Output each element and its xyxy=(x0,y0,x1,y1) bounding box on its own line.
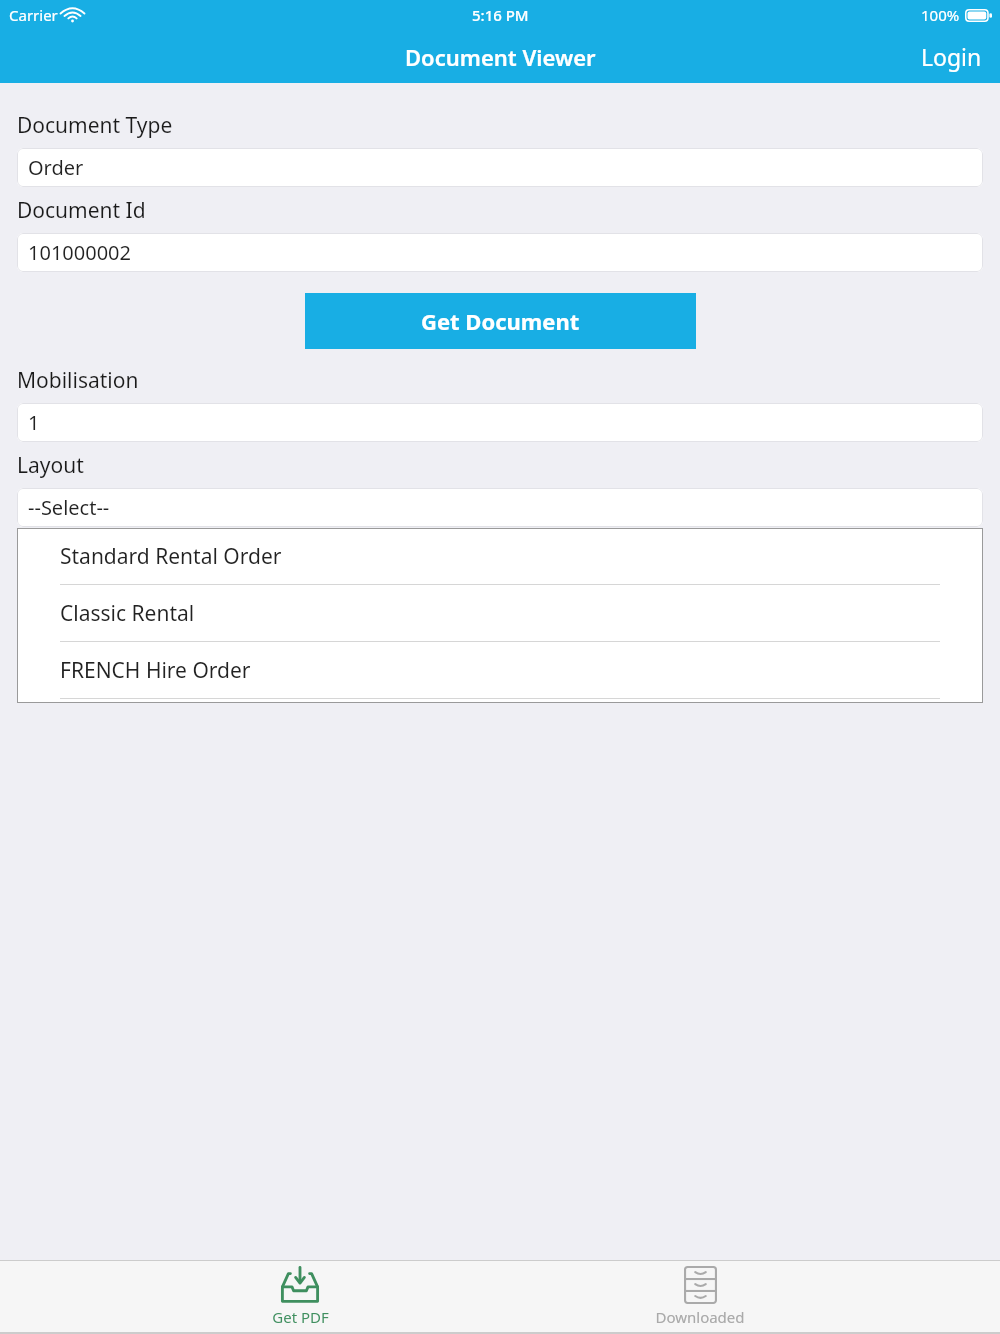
staticText: Get PDF xyxy=(272,1307,329,1327)
staticText: Login xyxy=(921,41,982,72)
staticText: Downloaded xyxy=(655,1307,745,1327)
button[interactable]: Get Document xyxy=(305,293,696,349)
staticText: Get Document xyxy=(421,306,580,336)
staticText: Classic Rental xyxy=(60,599,195,628)
button[interactable]: 1 xyxy=(17,403,983,442)
staticText: 1 xyxy=(28,409,40,436)
staticText: --Select-- xyxy=(28,494,110,521)
button[interactable]: Login xyxy=(903,33,1000,80)
staticText: Order xyxy=(28,154,84,181)
staticText: 100% xyxy=(921,5,960,25)
staticText: Document Viewer xyxy=(405,42,596,72)
button[interactable]: Get PDF xyxy=(200,1262,400,1331)
staticText: FRENCH Hire Order xyxy=(60,656,251,685)
staticText: 5:16 PM xyxy=(472,5,529,25)
staticText: Carrier xyxy=(9,5,58,25)
staticText: Layout xyxy=(17,451,84,480)
button[interactable]: --Select-- xyxy=(17,488,983,527)
button[interactable]: FRENCH Hire Order xyxy=(17,642,983,699)
button[interactable]: Classic Rental xyxy=(17,585,983,642)
staticText: Document Id xyxy=(17,196,146,225)
staticText: Document Type xyxy=(17,111,173,140)
button[interactable]: Standard Rental Order xyxy=(17,528,983,585)
staticText: Standard Rental Order xyxy=(60,542,282,571)
staticText: 101000002 xyxy=(28,239,131,266)
button[interactable]: Order xyxy=(17,148,983,187)
staticText: Mobilisation xyxy=(17,366,139,395)
button[interactable]: Downloaded xyxy=(600,1262,800,1331)
button[interactable]: 101000002 xyxy=(17,233,983,272)
